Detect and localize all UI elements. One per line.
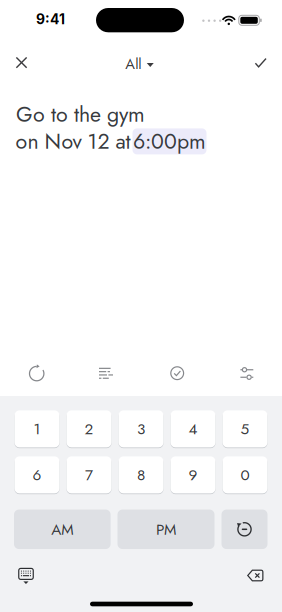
staticText: 1	[33, 418, 40, 440]
staticText: 5	[240, 418, 249, 440]
button[interactable]: 5	[222, 410, 267, 448]
staticText: 9	[188, 464, 197, 486]
button[interactable]: 4	[170, 410, 215, 448]
button[interactable]	[11, 563, 41, 589]
button[interactable]: 1	[14, 410, 59, 448]
button[interactable]: 6	[14, 456, 59, 494]
button[interactable]: PM	[117, 509, 214, 549]
button[interactable]: 9	[170, 456, 215, 494]
button[interactable]: 0	[222, 456, 267, 494]
staticText: 0	[240, 464, 249, 486]
button[interactable]: 8	[118, 456, 163, 494]
button[interactable]	[227, 358, 267, 388]
staticText: 8	[137, 464, 145, 486]
staticText: All	[125, 53, 141, 74]
button[interactable]	[86, 358, 126, 388]
staticText: 7	[85, 464, 93, 486]
staticText: 2	[84, 418, 93, 440]
button[interactable]	[221, 509, 267, 549]
button[interactable]	[17, 359, 57, 389]
staticText: 6	[32, 464, 41, 486]
button[interactable]	[240, 562, 270, 588]
button[interactable]	[9, 51, 33, 75]
staticText: 6:00pm	[133, 126, 206, 157]
button[interactable]: All	[125, 53, 154, 74]
staticText: PM	[156, 518, 176, 540]
button[interactable]: 3	[118, 410, 163, 448]
button[interactable]	[157, 358, 197, 388]
button[interactable]	[249, 53, 273, 73]
staticText: 3	[137, 418, 145, 440]
button[interactable]: 2	[66, 410, 111, 448]
staticText: Go to the gym	[16, 99, 145, 130]
button[interactable]: AM	[14, 509, 111, 549]
staticText: 9:41	[36, 11, 65, 28]
button[interactable]: 7	[66, 456, 111, 494]
staticText: AM	[51, 518, 73, 540]
staticText: 4	[188, 418, 197, 440]
staticText: on Nov 12 at	[15, 126, 130, 157]
